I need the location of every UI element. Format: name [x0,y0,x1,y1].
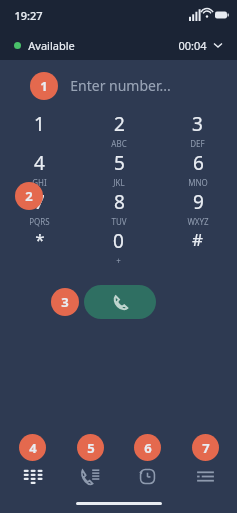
staticText: 3 [61,293,69,311]
staticText: 4 [29,439,37,457]
staticText: GHI [32,177,47,188]
staticText: 4 [34,150,45,176]
button[interactable]: 1 [0,111,79,150]
button[interactable]: 5 [79,150,158,189]
staticText: # [192,228,203,251]
staticText: 8 [114,189,125,215]
button[interactable]: Contacts [64,425,116,493]
staticText: WXYZ [187,216,209,227]
button[interactable]: Menu [179,425,231,493]
staticText: JKL [113,177,125,188]
button[interactable]: # [158,228,237,267]
staticText: Available [28,38,75,53]
staticText: 00:04 [178,38,207,53]
button[interactable]: 7 [0,189,79,228]
button[interactable]: 6 [158,150,237,189]
staticText: Enter number... [70,76,171,95]
staticText: 3 [192,111,203,137]
button[interactable]: 3 [158,111,237,150]
staticText: 7 [34,189,45,215]
staticText: 0 [113,228,124,254]
staticText: MNO [188,177,208,188]
staticText: TUV [111,216,127,227]
staticText: 5 [87,439,95,457]
staticText: 6 [193,150,204,176]
button[interactable]: 0 [79,228,158,267]
button[interactable]: 9 [158,189,237,228]
button[interactable]: Keypad [6,425,58,493]
staticText: 5 [114,150,125,176]
staticText: ABC [111,138,127,149]
button[interactable]: 4 [0,150,79,189]
button[interactable]: 2 [79,111,158,150]
staticText: PQRS [29,216,50,227]
staticText: 1 [34,111,45,137]
button[interactable]: Call [84,285,156,319]
staticText: 1 [40,77,48,95]
button[interactable]: Recents [121,425,173,493]
staticText: 19:27 [14,8,43,23]
staticText: 9 [193,189,204,215]
staticText: DEF [190,138,205,149]
staticText: 2 [114,111,125,137]
button[interactable]: * [0,228,79,267]
staticText: 7 [202,439,210,457]
button[interactable]: 8 [79,189,158,228]
staticText: 2 [25,187,33,205]
staticText: 6 [144,439,152,457]
staticText: + [116,255,121,266]
staticText: * [35,228,45,251]
